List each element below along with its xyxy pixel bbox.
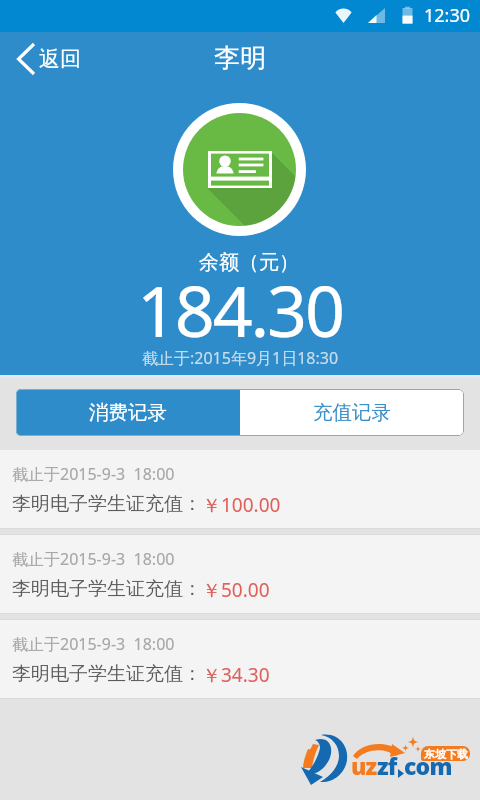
staticText: 截止于:2015年9月1日18:30 [142,347,339,369]
staticText: 充值记录 [313,400,391,425]
button[interactable]: 截止于2015-9-3 18:00 [0,535,480,613]
staticText: 李明 [214,42,266,75]
staticText: zf [377,750,397,781]
button[interactable]: 截止于2015-9-3 18:00 [0,620,480,698]
staticText: ￥50.00 [202,577,270,603]
staticText: uz [351,750,377,781]
staticText: 截止于2015-9-3 18:00 [12,548,175,570]
staticText: 李明电子学生证充值： [12,577,202,601]
button[interactable]: 充值记录 [240,389,464,436]
staticText: 李明电子学生证充值： [12,492,202,516]
staticText: 余额（元） [199,250,299,275]
staticText: 李明电子学生证充值： [12,662,202,686]
button[interactable]: 消费记录 [16,389,240,436]
staticText: ￥100.00 [202,492,281,518]
staticText: 截止于2015-9-3 18:00 [12,633,175,655]
staticText: 返回 [39,46,81,72]
staticText: 184.30 [137,262,343,357]
staticText: ￥34.30 [202,662,270,688]
button[interactable]: 截止于2015-9-3 18:00 [0,450,480,528]
button[interactable]: 返回 [0,36,97,82]
staticText: 截止于2015-9-3 18:00 [12,463,175,485]
staticText: 消费记录 [89,400,167,425]
staticText: 东坡下载 [424,747,468,761]
staticText: 12:30 [424,3,471,28]
staticText: com [404,750,452,781]
